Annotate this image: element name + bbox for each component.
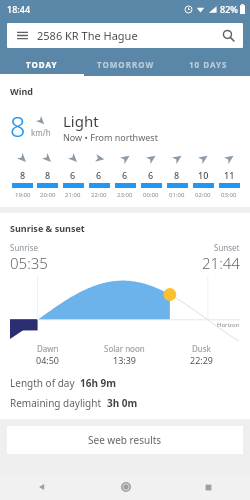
- staticText: Wind: [10, 85, 33, 97]
- staticText: 3h 0m: [107, 396, 138, 410]
- staticText: 6: [96, 169, 102, 181]
- staticText: 82%: [220, 3, 238, 15]
- staticText: Solar noon: [104, 343, 145, 354]
- staticText: 05:35: [10, 253, 48, 273]
- staticText: 11: [224, 169, 235, 181]
- staticText: 13:39: [113, 354, 137, 366]
- staticText: TODAY: [26, 59, 58, 70]
- button[interactable]: TODAY: [0, 52, 84, 76]
- staticText: 02:00: [195, 191, 211, 199]
- staticText: Horizon: [217, 321, 240, 329]
- staticText: 21:44: [202, 253, 240, 273]
- button[interactable]: Menu: [7, 23, 37, 48]
- staticText: 8: [45, 169, 51, 181]
- button[interactable]: Recent apps: [167, 474, 250, 500]
- staticText: 8: [10, 108, 26, 145]
- staticText: 23:00: [117, 191, 133, 199]
- staticText: 00:00: [143, 191, 159, 199]
- staticText: 21:00: [65, 191, 81, 199]
- staticText: Remaining daylight: [10, 396, 102, 410]
- staticText: 10 DAYS: [189, 59, 228, 70]
- staticText: Now • From northwest: [63, 131, 158, 143]
- staticText: 22:29: [190, 354, 214, 366]
- staticText: 6: [70, 169, 76, 181]
- staticText: Sunset: [214, 242, 240, 253]
- staticText: 16h 9m: [80, 376, 117, 390]
- staticText: Dusk: [192, 343, 211, 354]
- staticText: Sunrise & sunset: [10, 222, 85, 234]
- staticText: 04:50: [36, 354, 60, 366]
- staticText: Light: [63, 111, 99, 131]
- staticText: 8: [174, 169, 180, 181]
- staticText: 20:00: [40, 191, 56, 199]
- staticText: 6: [148, 169, 154, 181]
- staticText: 03:00: [221, 191, 237, 199]
- staticText: 22:00: [91, 191, 107, 199]
- staticText: km/h: [31, 127, 51, 138]
- button[interactable]: TOMORROW: [84, 52, 167, 76]
- staticText: 10: [198, 169, 209, 181]
- staticText: TOMORROW: [97, 59, 155, 70]
- button[interactable]: 10 DAYS: [167, 52, 250, 76]
- staticText: 18:44: [7, 3, 31, 15]
- staticText: 01:00: [169, 191, 185, 199]
- staticText: 6: [122, 169, 128, 181]
- button[interactable]: See web results: [7, 426, 243, 454]
- staticText: Length of day: [10, 376, 75, 390]
- staticText: 2586 KR The Hague: [37, 28, 213, 43]
- staticText: 8: [20, 169, 26, 181]
- button[interactable]: Back: [0, 474, 84, 500]
- staticText: Dawn: [37, 343, 59, 354]
- button[interactable]: Menu: [7, 23, 243, 48]
- button[interactable]: Home: [84, 474, 167, 500]
- staticText: 19:00: [15, 191, 31, 199]
- staticText: Sunrise: [10, 242, 38, 253]
- staticText: See web results: [88, 433, 162, 447]
- button[interactable]: Search: [213, 23, 243, 48]
